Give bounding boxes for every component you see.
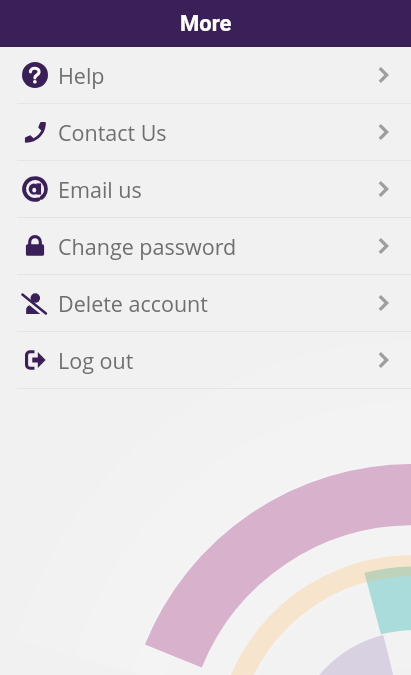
button[interactable]: Delete account: [0, 275, 411, 332]
button[interactable]: Email us: [0, 161, 411, 218]
button[interactable]: Contact Us: [0, 104, 411, 161]
button[interactable]: Log out: [0, 332, 411, 389]
staticText: Contact Us: [58, 118, 167, 147]
staticText: Log out: [58, 346, 134, 375]
staticText: More: [180, 11, 232, 37]
staticText: Change password: [58, 232, 237, 261]
button[interactable]: Change password: [0, 218, 411, 275]
staticText: Help: [58, 61, 105, 90]
staticText: Delete account: [58, 289, 208, 318]
staticText: Email us: [58, 175, 142, 204]
button[interactable]: Help: [0, 47, 411, 104]
